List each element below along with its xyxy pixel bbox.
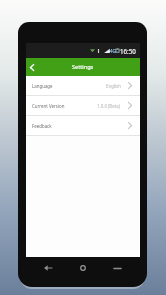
button[interactable]: Language (26, 76, 140, 95)
staticText: English (106, 83, 121, 89)
staticText: Feedback (32, 123, 52, 129)
button[interactable]: Recent apps (108, 259, 126, 277)
staticText: Language (32, 83, 53, 89)
staticText: Current Version (32, 103, 65, 109)
staticText: Settings (72, 63, 94, 71)
button[interactable]: Home (74, 259, 92, 277)
button[interactable]: Current Version (26, 96, 140, 115)
staticText: 1.0.0 (Beta) (97, 103, 121, 109)
button[interactable]: Feedback (26, 116, 140, 135)
staticText: 16:50 (120, 47, 136, 55)
button[interactable]: Back (39, 259, 57, 277)
staticText: 4G (110, 48, 116, 54)
button[interactable]: Back (26, 58, 37, 76)
